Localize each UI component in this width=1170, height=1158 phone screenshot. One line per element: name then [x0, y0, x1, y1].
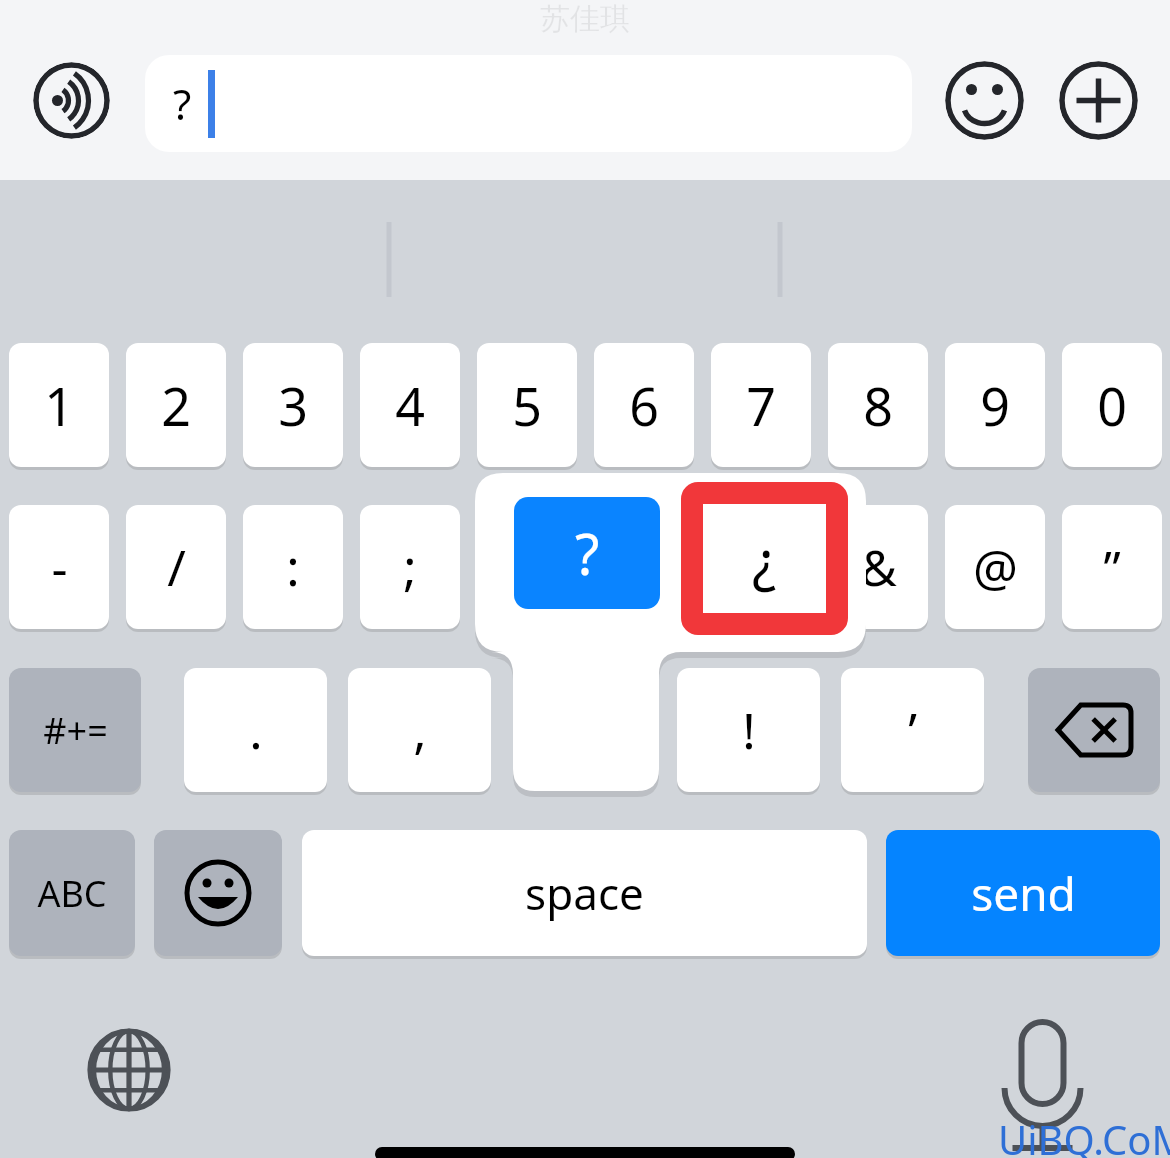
- staticText: -: [51, 533, 68, 601]
- button[interactable]: Emoji keyboard: [154, 830, 282, 956]
- staticText: ABC: [37, 869, 107, 918]
- button[interactable]: ,: [348, 668, 491, 792]
- button[interactable]: :: [243, 505, 343, 629]
- button[interactable]: send: [886, 830, 1160, 956]
- staticText: send: [971, 862, 1076, 925]
- button[interactable]: /: [126, 505, 226, 629]
- staticText: 9: [980, 370, 1010, 441]
- staticText: &: [860, 533, 897, 601]
- button[interactable]: 6: [594, 343, 694, 467]
- staticText: 5: [512, 370, 542, 441]
- staticText: @: [973, 533, 1018, 601]
- button[interactable]: ’: [841, 668, 984, 792]
- button[interactable]: #+=: [9, 668, 141, 792]
- button[interactable]: Delete: [1028, 668, 1160, 792]
- staticText: ?: [173, 75, 192, 132]
- button[interactable]: 2: [126, 343, 226, 467]
- button[interactable]: .: [184, 668, 327, 792]
- staticText: .: [249, 696, 263, 764]
- button[interactable]: 0: [1062, 343, 1162, 467]
- staticText: ”: [1103, 535, 1121, 600]
- staticText: ?: [575, 515, 600, 591]
- button[interactable]: 4: [360, 343, 460, 467]
- staticText: 4: [395, 370, 425, 441]
- button[interactable]: 8: [828, 343, 928, 467]
- button[interactable]: Add attachment: [1059, 61, 1138, 140]
- staticText: space: [525, 863, 644, 923]
- button[interactable]: Dictation: [995, 1018, 1090, 1128]
- button[interactable]: ABC: [9, 830, 135, 956]
- button[interactable]: Change keyboard language: [85, 1026, 173, 1114]
- button[interactable]: Audio message: [33, 62, 110, 139]
- staticText: ’: [908, 696, 917, 764]
- button[interactable]: @: [945, 505, 1045, 629]
- button[interactable]: -: [9, 505, 109, 629]
- staticText: 苏佳琪: [540, 0, 630, 38]
- staticText: 3: [278, 370, 308, 441]
- button[interactable]: 7: [711, 343, 811, 467]
- staticText: 0: [1097, 370, 1127, 441]
- staticText: ,: [413, 696, 427, 764]
- staticText: 7: [746, 370, 776, 441]
- button[interactable]: ”: [1062, 505, 1162, 629]
- button[interactable]: &: [828, 505, 928, 629]
- button[interactable]: 1: [9, 343, 109, 467]
- staticText: 6: [629, 370, 659, 441]
- staticText: 1: [44, 370, 74, 441]
- staticText: ;: [403, 533, 417, 601]
- staticText: #+=: [43, 706, 108, 755]
- button[interactable]: ;: [360, 505, 460, 629]
- button[interactable]: Emoji: [945, 61, 1024, 140]
- button[interactable]: 3: [243, 343, 343, 467]
- staticText: !: [742, 696, 756, 764]
- staticText: :: [286, 533, 300, 601]
- staticText: /: [167, 533, 186, 601]
- staticText: 8: [863, 370, 893, 441]
- button[interactable]: ?: [145, 55, 912, 152]
- staticText: 2: [161, 370, 191, 441]
- button[interactable]: space: [302, 830, 867, 956]
- staticText: UiBQ.CoM: [998, 1112, 1170, 1158]
- button[interactable]: ¿: [681, 482, 848, 635]
- button[interactable]: 5: [477, 343, 577, 467]
- button[interactable]: !: [677, 668, 820, 792]
- button[interactable]: ?: [514, 497, 660, 609]
- staticText: ¿: [752, 521, 777, 597]
- button[interactable]: 9: [945, 343, 1045, 467]
